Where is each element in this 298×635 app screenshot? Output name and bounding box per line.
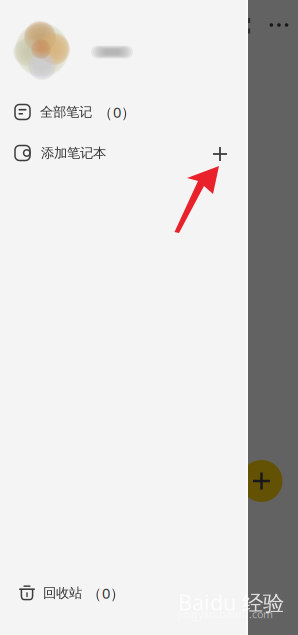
- button[interactable]: New note: [240, 460, 282, 502]
- staticText: 添加笔记本: [41, 145, 106, 161]
- button[interactable]: Account: [0, 0, 190, 74]
- button[interactable]: 回收站: [0, 575, 229, 611]
- button[interactable]: 全部笔记: [0, 92, 233, 132]
- staticText: （0）: [87, 583, 125, 603]
- button[interactable]: More options: [261, 11, 297, 39]
- button[interactable]: 添加笔记本: [0, 133, 233, 173]
- staticText: Baidu 经验: [178, 588, 284, 616]
- staticText: 全部笔记: [40, 104, 92, 120]
- staticText: jingyan.baidu.com: [178, 607, 273, 621]
- staticText: 回收站: [43, 585, 82, 601]
- staticText: （0）: [98, 102, 136, 122]
